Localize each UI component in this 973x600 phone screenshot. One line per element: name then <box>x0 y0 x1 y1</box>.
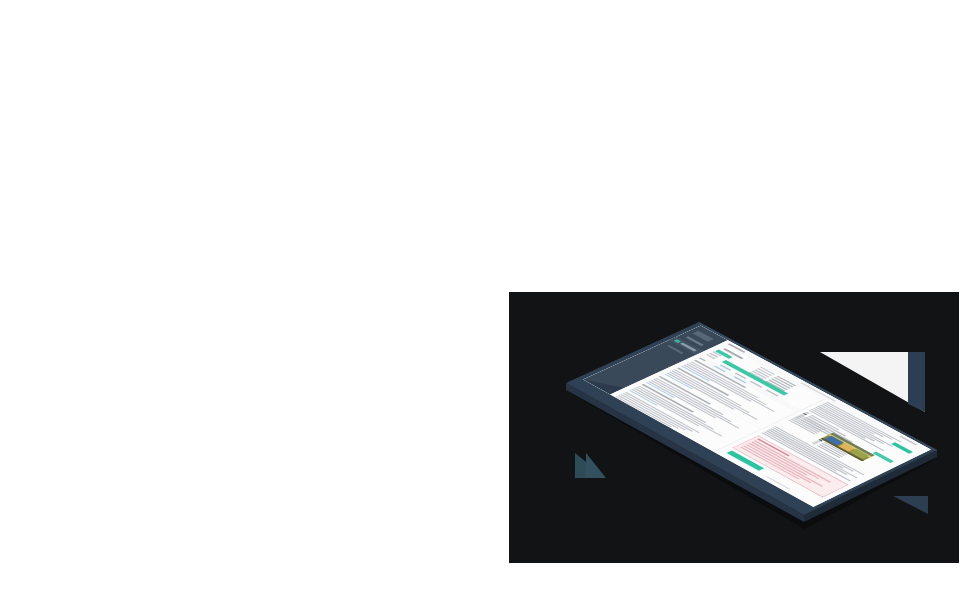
button[interactable]: Dashboard device mockup <box>0 0 973 600</box>
